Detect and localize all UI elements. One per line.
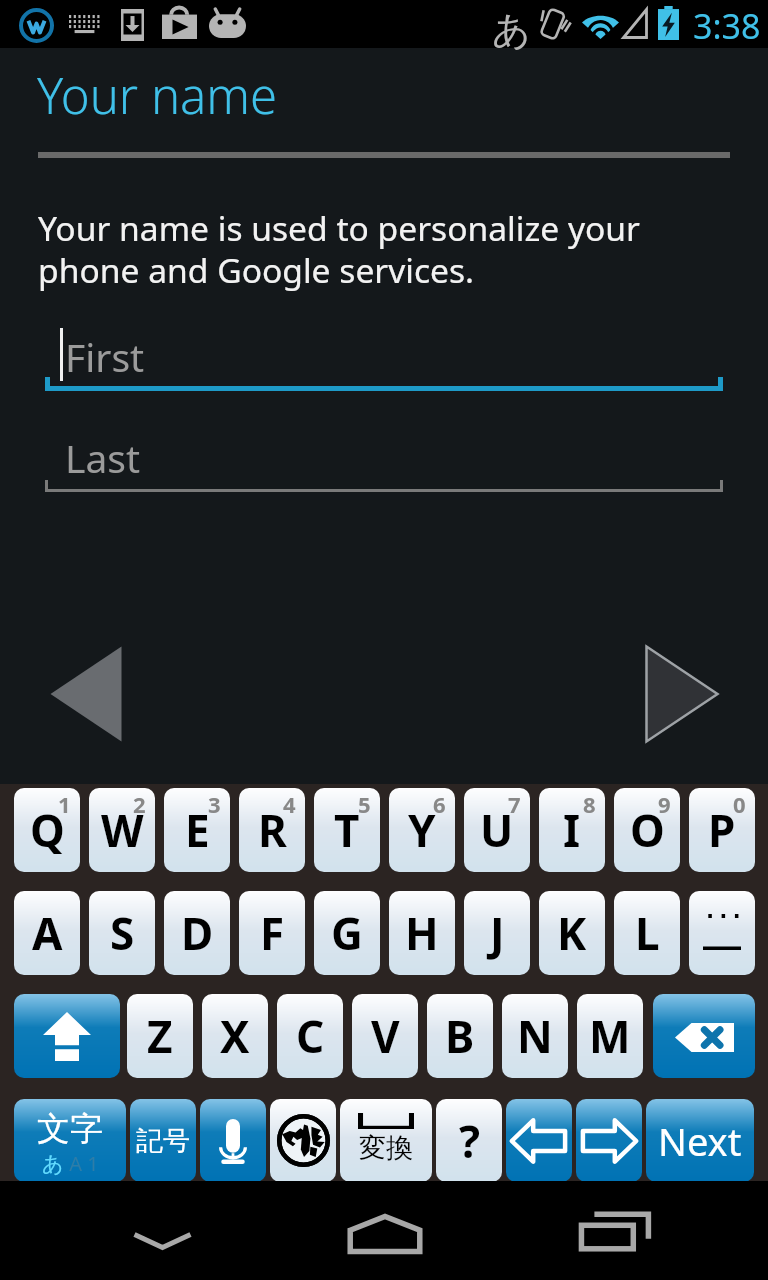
staticText: E — [185, 800, 210, 860]
staticText: Y — [408, 800, 436, 860]
staticText: 3 — [208, 789, 221, 819]
staticText: O — [630, 800, 665, 860]
staticText: F — [260, 903, 285, 963]
button[interactable]: C — [277, 994, 343, 1078]
staticText: 6 — [433, 789, 446, 819]
button[interactable]: Symbols — [689, 891, 755, 975]
button[interactable]: U — [464, 788, 530, 872]
staticText: 記号 — [136, 1124, 190, 1158]
button[interactable]: 記号 — [130, 1099, 196, 1182]
button[interactable]: Next — [636, 636, 728, 752]
button[interactable]: Hide keyboard — [97, 1181, 225, 1280]
button[interactable]: E — [164, 788, 230, 872]
button[interactable]: H — [389, 891, 455, 975]
staticText: Next — [658, 1115, 742, 1167]
staticText: W — [101, 800, 144, 860]
button[interactable]: Convert — [340, 1099, 432, 1182]
staticText: Z — [147, 1006, 173, 1066]
staticText: 2 — [133, 789, 146, 819]
staticText: M — [589, 1006, 631, 1066]
staticText: 8 — [583, 789, 596, 819]
staticText: A 1 — [64, 1150, 99, 1177]
staticText: 5 — [358, 789, 371, 819]
staticText: P — [708, 800, 736, 860]
staticText: First — [65, 330, 145, 383]
button[interactable]: Last — [45, 431, 723, 492]
button[interactable]: T — [314, 788, 380, 872]
button[interactable]: N — [502, 994, 568, 1078]
staticText: A — [32, 903, 63, 963]
button[interactable]: S — [89, 891, 155, 975]
button[interactable]: ? — [436, 1099, 502, 1182]
button[interactable]: A — [14, 891, 80, 975]
button[interactable]: First — [45, 330, 723, 391]
staticText: 0 — [733, 789, 746, 819]
staticText: 4 — [283, 789, 296, 819]
staticText: K — [557, 903, 587, 963]
button[interactable]: Recent apps — [550, 1181, 678, 1280]
staticText: S — [110, 903, 135, 963]
staticText: ? — [459, 1111, 480, 1171]
button[interactable]: Q — [14, 788, 80, 872]
button[interactable]: O — [614, 788, 680, 872]
staticText: D — [181, 903, 214, 963]
button[interactable]: L — [614, 891, 680, 975]
staticText: U — [480, 800, 514, 860]
button[interactable]: Y — [389, 788, 455, 872]
button[interactable]: I — [539, 788, 605, 872]
staticText: J — [490, 903, 505, 963]
button[interactable]: Change input mode — [14, 1099, 126, 1182]
staticText: 変換 — [359, 1131, 413, 1165]
button[interactable]: X — [202, 994, 268, 1078]
button[interactable]: Delete — [653, 994, 755, 1078]
staticText: I — [563, 800, 581, 860]
button[interactable]: B — [427, 994, 493, 1078]
staticText: Your name — [37, 62, 278, 129]
staticText: R — [258, 800, 287, 860]
button[interactable]: M — [577, 994, 643, 1078]
button[interactable]: Shift — [14, 994, 120, 1078]
button[interactable]: Move cursor left — [506, 1099, 572, 1182]
staticText: G — [331, 903, 363, 963]
staticText: 7 — [508, 789, 521, 819]
staticText: 文字 — [37, 1108, 103, 1150]
staticText: T — [334, 800, 360, 860]
button[interactable]: J — [464, 891, 530, 975]
button[interactable]: Move cursor right — [576, 1099, 642, 1182]
staticText: 9 — [658, 789, 671, 819]
staticText: V — [371, 1006, 400, 1066]
button[interactable]: Home — [320, 1181, 448, 1280]
staticText: X — [220, 1006, 250, 1066]
button[interactable]: R — [239, 788, 305, 872]
button[interactable]: G — [314, 891, 380, 975]
staticText: C — [296, 1006, 325, 1066]
button[interactable]: K — [539, 891, 605, 975]
staticText: Last — [65, 431, 141, 484]
button[interactable]: Back — [40, 636, 132, 752]
button[interactable]: W — [89, 788, 155, 872]
staticText: B — [445, 1006, 475, 1066]
button[interactable]: D — [164, 891, 230, 975]
staticText: 3:38 — [693, 3, 761, 49]
button[interactable]: Change language — [270, 1099, 336, 1182]
staticText: Q — [30, 800, 65, 860]
staticText: 1 — [58, 789, 71, 819]
button[interactable]: Z — [127, 994, 193, 1078]
staticText: H — [405, 903, 439, 963]
staticText: あ — [492, 6, 531, 54]
staticText: N — [517, 1006, 553, 1066]
staticText: L — [635, 903, 660, 963]
button[interactable]: P — [689, 788, 755, 872]
button[interactable]: Voice input — [200, 1099, 266, 1182]
staticText: Your name is used to personalize your ph… — [38, 205, 640, 293]
button[interactable]: V — [352, 994, 418, 1078]
button[interactable]: F — [239, 891, 305, 975]
button[interactable]: Next — [646, 1099, 754, 1182]
staticText: あ — [42, 1151, 64, 1177]
